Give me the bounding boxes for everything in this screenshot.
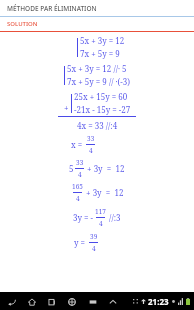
staticText: 7x + 5y = 9 // ·(-3) bbox=[67, 76, 131, 87]
staticText: y = bbox=[74, 237, 88, 248]
staticText: MÉTHODE PAR ÉLIMINATION bbox=[7, 4, 97, 13]
staticText: + bbox=[64, 102, 69, 113]
staticText: 21:23 bbox=[148, 296, 169, 307]
staticText: SOLUTION bbox=[7, 20, 38, 28]
staticText: 39 bbox=[90, 232, 98, 241]
button[interactable]: MÉTHODE PAR ÉLIMINATION bbox=[0, 0, 194, 16]
staticText: 5x + 3y = 12 bbox=[80, 35, 125, 46]
staticText: 4 bbox=[89, 146, 93, 155]
staticText: 25x + 15y = 60 bbox=[74, 91, 128, 102]
button[interactable]: SOLUTION bbox=[0, 17, 194, 31]
staticText: x = bbox=[71, 139, 85, 150]
staticText: + 3y = 12 bbox=[84, 187, 124, 198]
staticText: 4x = 33 //:4 bbox=[77, 120, 118, 131]
staticText: 5x + 3y = 12 //· 5 bbox=[67, 63, 127, 74]
staticText: 3y = - bbox=[73, 212, 94, 223]
staticText: 7x + 5y = 9 bbox=[80, 48, 120, 59]
staticText: 4 bbox=[92, 244, 96, 253]
staticText: 117 bbox=[95, 207, 106, 216]
button[interactable]: Screenshot bbox=[66, 296, 77, 307]
staticText: 4 bbox=[99, 219, 103, 228]
staticText: 165 bbox=[72, 182, 83, 191]
staticText: + 3y = 12 bbox=[85, 163, 125, 174]
button[interactable]: Expand bbox=[107, 296, 118, 307]
staticText: 33 bbox=[87, 134, 95, 143]
button[interactable]: Home bbox=[26, 296, 37, 307]
staticText: -21x - 15y = -27 bbox=[74, 104, 131, 115]
staticText: 4 bbox=[78, 170, 82, 179]
staticText: 4 bbox=[76, 194, 80, 203]
button[interactable]: Menu bbox=[87, 296, 98, 307]
staticText: 5 bbox=[69, 163, 74, 174]
staticText: //:3 bbox=[107, 212, 121, 223]
staticText: 33 bbox=[76, 158, 84, 167]
button[interactable]: Recent apps bbox=[46, 296, 57, 307]
button[interactable]: Back bbox=[6, 296, 17, 307]
